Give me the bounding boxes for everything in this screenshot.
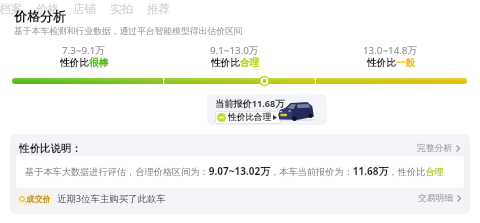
staticText: 13.0~14.8万 (363, 44, 418, 57)
staticText: 性价比合理 (211, 57, 259, 69)
staticText: 性价比很棒 (60, 57, 108, 69)
button[interactable]: 成交价 (13, 190, 465, 207)
staticText: 性价比合理 (228, 112, 271, 123)
button[interactable]: 推荐 (144, 0, 173, 18)
staticText: 档案 (0, 2, 22, 16)
staticText: 推荐 (147, 2, 170, 16)
staticText: 完整分析 (417, 143, 453, 154)
staticText: 价格 (36, 2, 59, 16)
staticText: 价格分析 (14, 8, 66, 24)
staticText: 基于本车大数据进行评估，合理价格区间为：9.07~13.02万，本车当前报价为：… (25, 164, 444, 178)
staticText: 9.1~13.0万 (210, 44, 259, 57)
button[interactable]: 价格 (33, 0, 62, 18)
staticText: 性价比说明： (19, 142, 82, 155)
staticText: 当前报价11.68万 (215, 97, 285, 110)
staticText: 性价比一般 (367, 57, 415, 69)
staticText: 7.3~9.1万 (62, 44, 106, 57)
staticText: 近期3位车主购买了此款车 (57, 192, 166, 205)
staticText: 基于本车检测和行业数据，通过平台智能模型得出估价区间 (14, 26, 243, 37)
button[interactable]: 当前报价11.68万 (207, 94, 327, 125)
button[interactable]: 完整分析 (414, 141, 463, 156)
staticText: 店铺 (73, 2, 96, 16)
staticText: 交易明细 (418, 193, 454, 204)
staticText: 成交价 (26, 194, 51, 204)
staticText: 实拍 (110, 2, 133, 16)
button[interactable]: 实拍 (107, 0, 136, 18)
button[interactable]: 档案 (0, 0, 25, 18)
button[interactable]: 店铺 (70, 0, 99, 18)
